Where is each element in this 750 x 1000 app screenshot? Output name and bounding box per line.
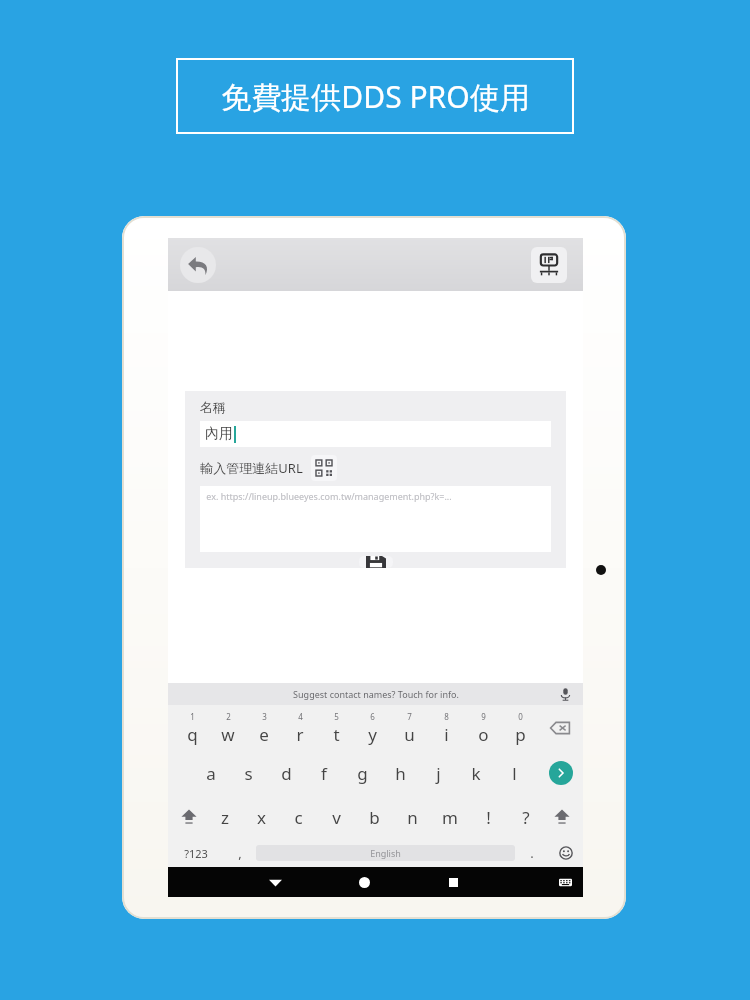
button[interactable]: 9 xyxy=(465,705,502,751)
staticText: ? xyxy=(522,806,530,829)
staticText: a xyxy=(206,762,216,785)
staticText: 5 xyxy=(334,711,339,722)
staticText: m xyxy=(442,806,458,829)
button[interactable]: l xyxy=(495,751,533,795)
staticText: h xyxy=(395,762,406,785)
staticText: n xyxy=(407,806,418,829)
staticText: k xyxy=(471,762,481,785)
button[interactable]: English xyxy=(256,845,515,861)
staticText: r xyxy=(296,723,304,746)
button[interactable]: , xyxy=(224,839,256,867)
button[interactable]: j xyxy=(419,751,457,795)
button[interactable]: a xyxy=(192,751,229,795)
button[interactable]: Hide keyboard xyxy=(260,867,290,897)
button[interactable]: d xyxy=(267,751,305,795)
staticText: z xyxy=(221,806,229,829)
button[interactable]: 0 xyxy=(502,705,539,751)
button[interactable]: c xyxy=(280,795,317,839)
button[interactable]: . xyxy=(515,839,549,867)
staticText: d xyxy=(281,762,292,785)
button[interactable]: s xyxy=(229,751,267,795)
button[interactable]: Shift xyxy=(549,804,575,830)
staticText: u xyxy=(404,723,415,746)
staticText: 9 xyxy=(481,711,486,722)
button[interactable]: ex. https://lineup.blueeyes.com.tw/manag… xyxy=(200,486,551,552)
button[interactable]: ! xyxy=(469,795,507,839)
staticText: 0 xyxy=(518,711,523,722)
staticText: g xyxy=(357,762,368,785)
button[interactable]: 免費提供DDS PRO使用 xyxy=(176,58,574,134)
button[interactable]: h xyxy=(381,751,419,795)
button[interactable]: Scan QR code xyxy=(311,455,337,481)
staticText: 名稱 xyxy=(200,399,226,415)
staticText: t xyxy=(333,723,340,746)
staticText: w xyxy=(221,723,235,746)
staticText: 3 xyxy=(262,711,267,722)
button[interactable]: Suggest contact names? Touch for info. xyxy=(168,683,583,705)
staticText: 7 xyxy=(407,711,412,722)
staticText: b xyxy=(369,806,380,829)
button[interactable]: x xyxy=(243,795,280,839)
button[interactable]: 5 xyxy=(318,705,354,751)
button[interactable]: Back xyxy=(180,247,216,283)
staticText: q xyxy=(187,723,198,746)
button[interactable]: Backspace xyxy=(545,713,575,743)
staticText: 輸入管理連結URL xyxy=(200,459,303,477)
staticText: 2 xyxy=(226,711,231,722)
staticText: y xyxy=(368,723,377,746)
button[interactable]: Shift xyxy=(176,804,202,830)
staticText: ?123 xyxy=(184,846,208,861)
staticText: 內用 xyxy=(205,425,233,443)
staticText: s xyxy=(244,762,253,785)
button[interactable]: k xyxy=(457,751,495,795)
staticText: ! xyxy=(486,806,491,829)
staticText: i xyxy=(444,723,449,746)
staticText: 免費提供DDS PRO使用 xyxy=(221,76,530,117)
button[interactable]: g xyxy=(343,751,381,795)
staticText: j xyxy=(436,762,441,785)
staticText: Suggest contact names? Touch for info. xyxy=(293,688,459,700)
staticText: 1 xyxy=(190,711,195,722)
button[interactable]: b xyxy=(355,795,393,839)
button[interactable]: z xyxy=(206,795,243,839)
staticText: English xyxy=(370,847,401,859)
button[interactable]: Save xyxy=(359,556,393,568)
staticText: o xyxy=(478,723,489,746)
button[interactable]: 8 xyxy=(428,705,465,751)
button[interactable]: Keyboard layout xyxy=(551,868,579,896)
button[interactable]: Recent apps xyxy=(438,867,468,897)
staticText: , xyxy=(238,844,242,862)
button[interactable]: n xyxy=(393,795,431,839)
button[interactable]: 內用 xyxy=(200,421,551,447)
button[interactable]: f xyxy=(305,751,343,795)
staticText: c xyxy=(294,806,303,829)
staticText: ex. https://lineup.blueeyes.com.tw/manag… xyxy=(206,490,452,502)
button[interactable]: IP settings xyxy=(531,247,567,283)
button[interactable]: 1 xyxy=(174,705,210,751)
button[interactable]: ?123 xyxy=(168,839,224,867)
staticText: 4 xyxy=(298,711,303,722)
button[interactable]: ? xyxy=(507,795,545,839)
staticText: p xyxy=(515,723,526,746)
staticText: v xyxy=(332,806,341,829)
staticText: f xyxy=(321,762,327,785)
button[interactable]: 6 xyxy=(354,705,391,751)
button[interactable]: Emoji xyxy=(549,839,583,867)
button[interactable]: Enter xyxy=(549,761,573,785)
staticText: . xyxy=(530,844,534,862)
button[interactable]: 3 xyxy=(246,705,282,751)
staticText: x xyxy=(257,806,266,829)
button[interactable]: 7 xyxy=(391,705,428,751)
staticText: e xyxy=(259,723,269,746)
staticText: l xyxy=(512,762,517,785)
button[interactable]: Voice input xyxy=(557,686,573,702)
staticText: 6 xyxy=(370,711,375,722)
button[interactable]: Home xyxy=(349,867,379,897)
staticText: 8 xyxy=(444,711,449,722)
button[interactable]: 2 xyxy=(210,705,246,751)
button[interactable]: m xyxy=(431,795,469,839)
button[interactable]: v xyxy=(317,795,355,839)
button[interactable]: 4 xyxy=(282,705,318,751)
